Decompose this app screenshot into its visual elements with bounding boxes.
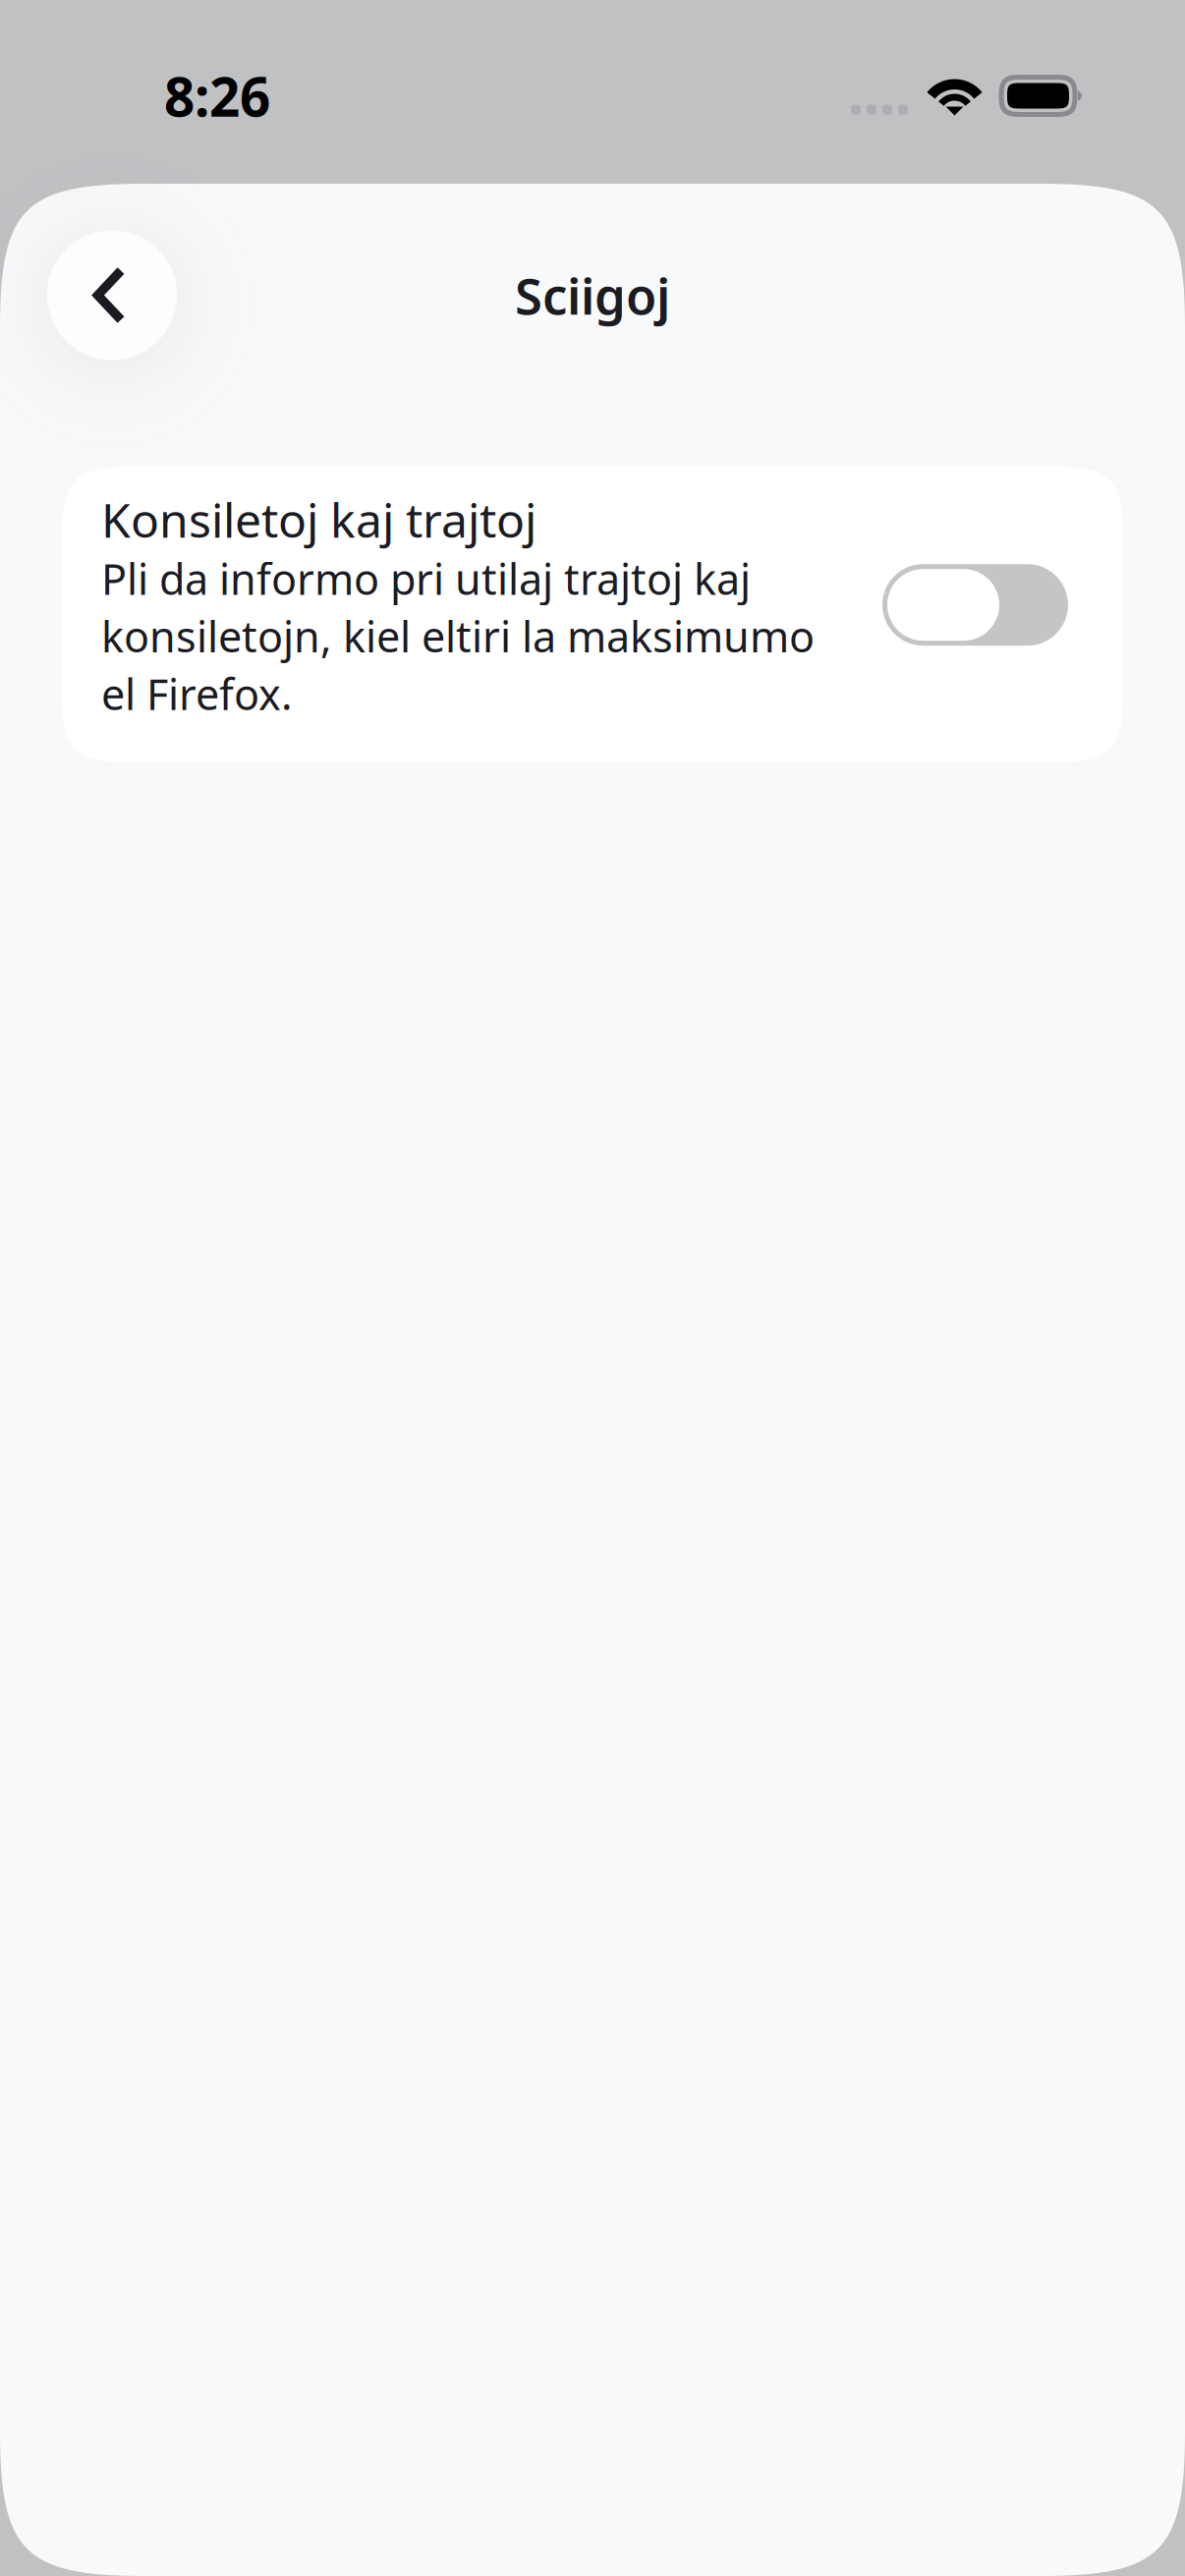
- staticText: 8:26: [164, 59, 270, 132]
- staticText: Konsiletoj kaj trajtoj: [101, 487, 536, 552]
- button[interactable]: Back: [47, 230, 177, 360]
- staticText: Pli da informo pri utilaj trajtoj kaj ko…: [101, 550, 815, 722]
- button[interactable]: Konsiletoj kaj trajtoj: [62, 467, 1123, 763]
- staticText: Sciigoj: [515, 261, 670, 329]
